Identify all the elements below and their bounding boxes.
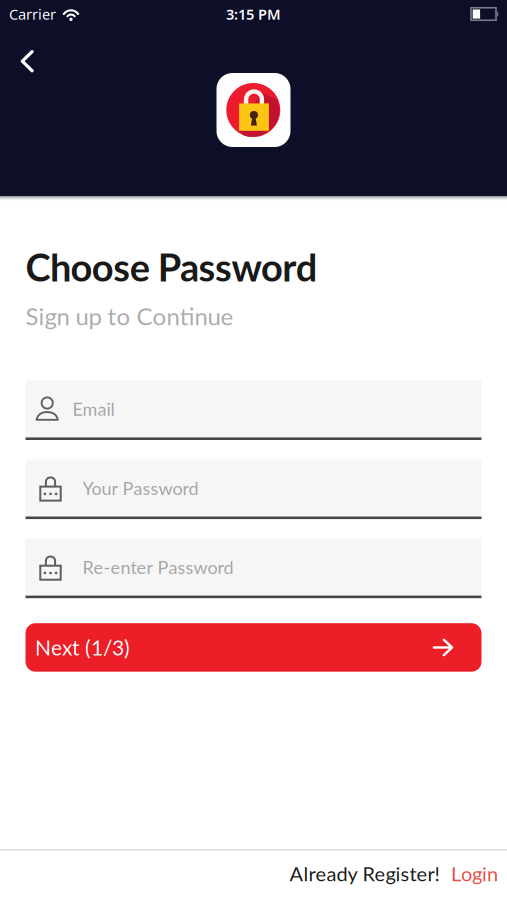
staticText: Your Password [82,477,198,499]
staticText: Sign up to Continue [25,302,233,330]
button[interactable]: Login [439,861,507,885]
button[interactable]: Next (1/3) [25,623,481,672]
staticText: Carrier [9,4,56,24]
staticText: Re-enter Password [82,556,233,578]
button[interactable]: Email [25,380,481,440]
button[interactable]: Your Password [25,459,481,519]
staticText: Already Register! [289,861,439,885]
button[interactable]: Back [0,25,34,73]
staticText: Login [451,861,498,885]
button[interactable]: Re-enter Password [25,539,481,598]
staticText: Choose Password [25,244,318,290]
staticText: Email [72,398,114,420]
staticText: Next (1/3) [35,635,130,660]
staticText: 3:15 PM [226,4,281,24]
